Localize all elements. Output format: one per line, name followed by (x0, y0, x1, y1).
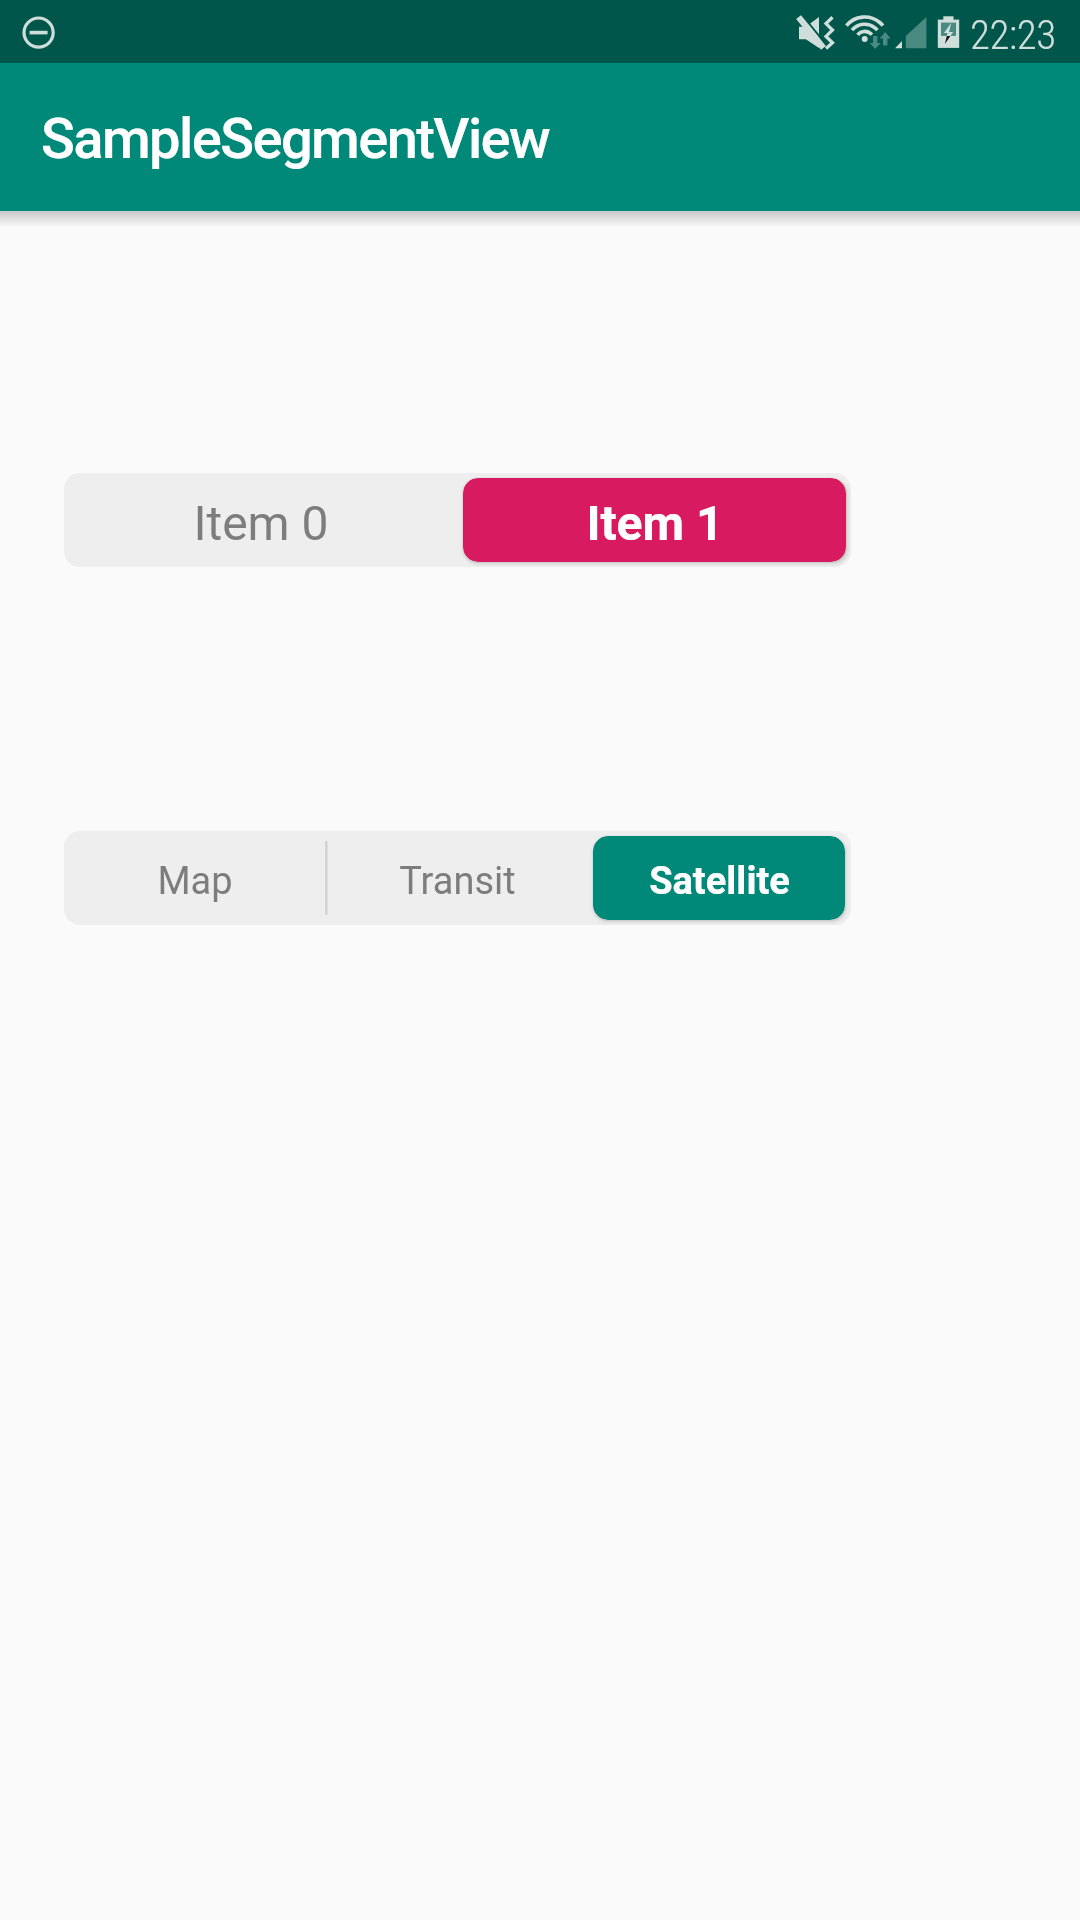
staticText: Transit (399, 859, 516, 904)
button[interactable]: Transit (326, 831, 588, 925)
staticText: 22:23 (970, 11, 1056, 59)
other: Status bar icons (0, 0, 1080, 63)
button[interactable]: Item 1 (458, 473, 851, 567)
staticText: Satellite (649, 859, 790, 904)
staticText: SampleSegmentView (41, 106, 550, 172)
button[interactable]: Satellite (588, 831, 850, 925)
staticText: Map (157, 859, 233, 904)
staticText: Item 0 (193, 495, 329, 551)
button[interactable]: Map (64, 831, 326, 925)
button[interactable]: Item 0 (64, 473, 458, 567)
staticText: Item 1 (586, 495, 724, 551)
button[interactable]: Do not disturb (0, 0, 56, 63)
